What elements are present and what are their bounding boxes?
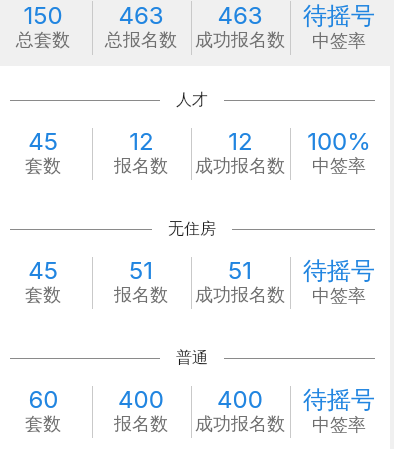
staticText: 待摇号	[303, 1, 375, 31]
staticText: 普通	[176, 348, 208, 368]
button[interactable]: 100%	[290, 127, 388, 181]
button[interactable]: 待摇号	[290, 256, 388, 310]
button[interactable]: 12	[92, 127, 190, 181]
button[interactable]: 150	[0, 1, 91, 55]
staticText: 报名数	[114, 155, 168, 178]
staticText: 中签率	[312, 30, 366, 53]
button[interactable]: 45	[0, 256, 91, 310]
staticText: 100%	[307, 127, 371, 156]
button[interactable]: 待摇号	[290, 1, 388, 55]
staticText: 400	[118, 385, 164, 414]
staticText: 60	[28, 385, 59, 414]
staticText: 51	[228, 256, 252, 285]
button[interactable]: 12	[191, 127, 289, 181]
staticText: 400	[217, 385, 263, 414]
staticText: 人才	[176, 90, 208, 110]
staticText: 45	[28, 127, 58, 156]
staticText: 463	[118, 1, 164, 30]
button[interactable]: 60	[0, 385, 91, 439]
staticText: 中签率	[312, 155, 366, 178]
staticText: 成功报名数	[195, 29, 285, 52]
staticText: 套数	[25, 284, 61, 307]
button[interactable]: 人才	[0, 90, 394, 110]
button[interactable]: 400	[191, 385, 289, 439]
staticText: 套数	[25, 155, 61, 178]
staticText: 中签率	[312, 285, 366, 308]
staticText: 成功报名数	[195, 413, 285, 436]
staticText: 报名数	[114, 284, 168, 307]
staticText: 45	[28, 256, 58, 285]
staticText: 套数	[25, 413, 61, 436]
staticText: 总套数	[16, 29, 70, 52]
button[interactable]: 51	[92, 256, 190, 310]
staticText: 150	[23, 1, 63, 30]
button[interactable]: 普通	[0, 348, 394, 368]
button[interactable]: 51	[191, 256, 289, 310]
staticText: 中签率	[312, 414, 366, 437]
staticText: 12	[129, 127, 154, 156]
button[interactable]: 45	[0, 127, 91, 181]
button[interactable]: 400	[92, 385, 190, 439]
staticText: 待摇号	[303, 256, 375, 286]
staticText: 无住房	[168, 219, 216, 239]
staticText: 51	[129, 256, 153, 285]
staticText: 报名数	[114, 413, 168, 436]
staticText: 总报名数	[105, 29, 177, 52]
staticText: 463	[217, 1, 263, 30]
button[interactable]: 待摇号	[290, 385, 388, 439]
button[interactable]: 无住房	[0, 219, 394, 239]
staticText: 待摇号	[303, 385, 375, 415]
button[interactable]: 463	[191, 1, 289, 55]
button[interactable]: 463	[92, 1, 190, 55]
staticText: 12	[228, 127, 253, 156]
staticText: 成功报名数	[195, 284, 285, 307]
staticText: 成功报名数	[195, 155, 285, 178]
